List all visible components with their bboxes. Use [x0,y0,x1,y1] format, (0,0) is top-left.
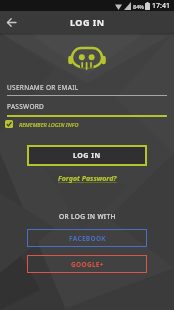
button[interactable]: FACEBOOK [27,229,147,247]
staticText: OR LOG IN WITH [59,212,116,221]
button[interactable]: LOG IN [27,145,147,166]
staticText: FACEBOOK [69,234,106,243]
staticText: GOOGLE+ [71,260,104,269]
staticText: PASSWORD [7,102,45,111]
staticText: 84% [133,3,144,10]
staticText: LOG IN [73,151,101,161]
staticText: LOG IN [70,16,105,28]
staticText: REMEMBER LOGIN INFO [19,121,79,128]
staticText: 17:41 [152,1,170,11]
button[interactable]: GOOGLE+ [27,255,147,273]
button[interactable]: REMEMBER LOGIN INFO [5,120,79,128]
button[interactable] [0,11,22,33]
button[interactable]: Forgot Password? [58,174,117,184]
staticText: USERNAME OR EMAIL [7,83,79,92]
